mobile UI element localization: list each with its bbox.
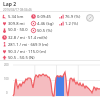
- staticText: 50.0 · 50.0 (%): [8, 27, 31, 34]
- staticText: 281.1 / mi · 669.9 (m): [8, 42, 49, 48]
- button[interactable]: 90.3 / mi · 115.0 (m): [2, 48, 54, 55]
- staticText: 200: [4, 63, 9, 67]
- staticText: Lap 2: [3, 1, 17, 8]
- staticText: 0: [6, 91, 8, 95]
- staticText: 309.8 mi: [8, 21, 25, 27]
- staticText: 76.9 (%): [65, 14, 81, 20]
- staticText: 32.8 / mi · 51.4 mi(h): [8, 35, 48, 41]
- button[interactable]: Map: [85, 13, 94, 22]
- staticText: 100: [4, 77, 9, 81]
- staticText: 50.5 - 50.5 (N): [8, 55, 35, 60]
- button[interactable]: 76.9 (%): [59, 13, 84, 20]
- staticText: 1.2 (%): [65, 21, 78, 27]
- staticText: 90.3 / mi · 115.0 (m): [8, 49, 47, 55]
- staticText: 4.46 (kg): [37, 21, 54, 27]
- button[interactable]: 309.8 mi: [2, 20, 31, 27]
- button[interactable]: 281.1 / mi · 669.9 (m): [2, 41, 54, 48]
- button[interactable]: 4.46 (kg): [31, 20, 59, 27]
- button[interactable]: 50.5 - 50.5 (N): [2, 55, 47, 60]
- staticText: 50.5 (%): [37, 28, 53, 34]
- button[interactable]: 50.5 (%): [31, 27, 59, 34]
- button[interactable]: 5.34 km: [2, 13, 31, 20]
- button[interactable]: 50.0 · 50.0 (%): [2, 27, 31, 34]
- button[interactable]: 1.2 (%): [59, 20, 84, 27]
- staticText: 2016/04/17 08:04:46: [3, 8, 32, 11]
- button[interactable]: 0:09:45: [31, 13, 59, 20]
- button[interactable]: 32.8 / mi · 51.4 mi(h): [2, 34, 54, 41]
- staticText: 5.34 km: [8, 14, 24, 20]
- staticText: 0:09:45: [37, 14, 51, 20]
